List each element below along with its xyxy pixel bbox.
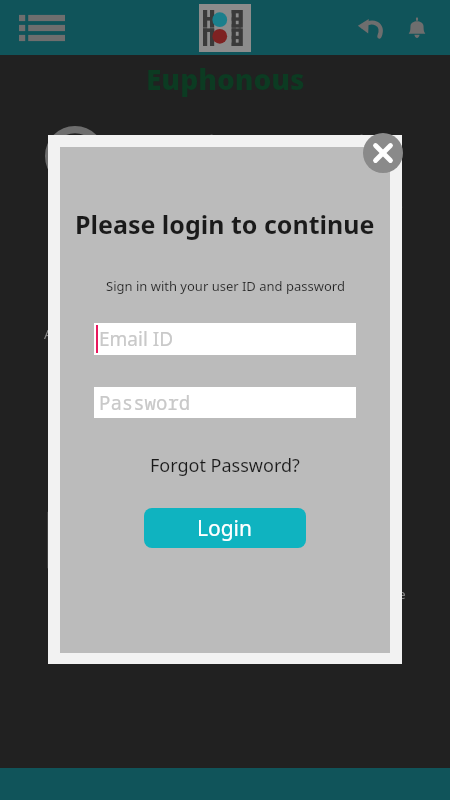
button[interactable]: CHEVRON (150, 103, 300, 233)
staticText: Notes (57, 585, 93, 603)
button[interactable]: Password (94, 387, 356, 418)
button[interactable]: Notifications (394, 5, 440, 51)
button[interactable]: CIRCLE (0, 233, 150, 363)
button[interactable]: PENCIL (0, 493, 150, 623)
button[interactable]: PROFILE (300, 493, 450, 623)
staticText: Password (99, 390, 191, 416)
staticText: Please login to continue (75, 207, 375, 241)
staticText: Sign in with your user ID and password (106, 277, 345, 295)
staticText: Speakers (347, 195, 403, 213)
button[interactable]: HANDSHAKE (150, 493, 300, 623)
button[interactable]: Close (363, 133, 403, 173)
button[interactable]: CLOCK (0, 103, 150, 233)
button[interactable]: GEAR (300, 363, 450, 493)
staticText: Attendees (44, 325, 106, 343)
button[interactable]: LETTER_U (150, 233, 300, 363)
button[interactable]: Email ID (94, 323, 356, 355)
button[interactable]: Login (144, 508, 306, 548)
staticText: Settings (200, 455, 250, 473)
button[interactable]: HobNob logo (199, 4, 251, 52)
button[interactable]: LETTER_U (300, 233, 450, 363)
staticText: Venue (356, 325, 395, 343)
staticText: Login (197, 514, 253, 543)
button[interactable]: Menu (14, 6, 70, 50)
button[interactable]: GEAR (150, 363, 300, 493)
staticText: Euphonous (146, 60, 305, 98)
button[interactable]: LIST (0, 363, 150, 493)
button[interactable]: CHEVRON (300, 103, 450, 233)
staticText: Forgot Password? (150, 453, 300, 478)
staticText: Agenda (52, 195, 99, 213)
button[interactable]: Back (348, 5, 394, 51)
button[interactable]: Forgot Password? (144, 451, 306, 480)
staticText: Email ID (99, 326, 174, 352)
staticText: Settings (350, 455, 400, 473)
staticText: My Profile (344, 585, 406, 603)
